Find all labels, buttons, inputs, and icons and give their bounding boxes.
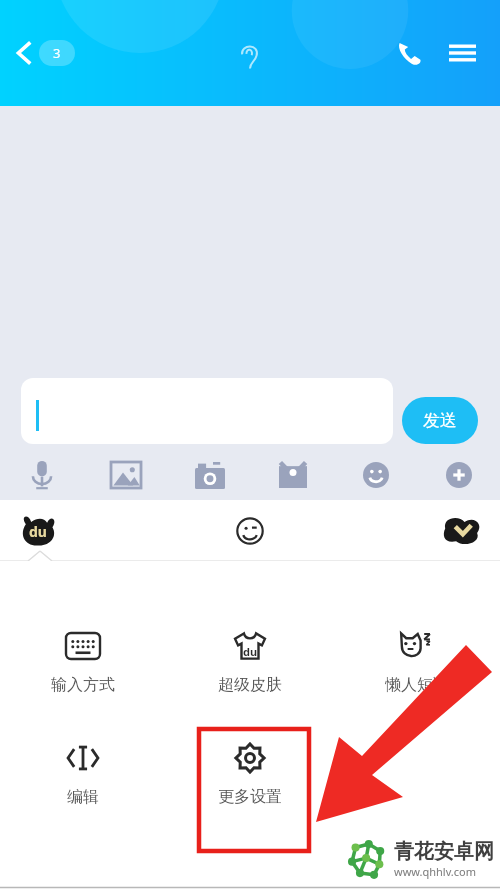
staticText: 发送 <box>423 410 457 431</box>
button[interactable]: Photo <box>84 452 168 498</box>
button[interactable]: Emoji <box>334 452 417 498</box>
button[interactable]: Baidu input <box>14 507 62 555</box>
staticText: 更多设置 <box>218 787 282 807</box>
staticText: du <box>243 644 258 659</box>
staticText: 超级皮肤 <box>218 675 282 695</box>
button[interactable]: Listen <box>229 35 271 77</box>
staticText: 输入方式 <box>51 675 115 695</box>
button[interactable]: Emoji <box>226 507 274 555</box>
staticText: 青花安卓网 <box>394 839 494 864</box>
staticText: du <box>29 522 47 541</box>
staticText: www.qhhlv.com <box>394 864 476 879</box>
button[interactable]: Call <box>388 31 432 75</box>
button[interactable]: Voice <box>0 452 84 498</box>
staticText: 懒人短语 <box>385 675 449 695</box>
button[interactable]: du <box>166 625 333 717</box>
staticText: 编辑 <box>67 787 99 807</box>
button[interactable]: 编辑 <box>0 737 166 829</box>
button[interactable]: Menu <box>440 31 484 75</box>
staticText: 3 <box>53 44 61 62</box>
button[interactable]: 发送 <box>402 397 478 444</box>
button[interactable]: More <box>417 452 500 498</box>
button[interactable]: 懒人短语 <box>333 625 500 717</box>
button[interactable] <box>21 378 393 444</box>
button[interactable]: Red packet <box>251 452 334 498</box>
button[interactable]: 输入方式 <box>0 625 166 717</box>
button[interactable]: 更多设置 <box>166 737 333 829</box>
button[interactable]: Camera <box>168 452 251 498</box>
button[interactable]: Collapse keyboard <box>438 507 486 555</box>
button[interactable]: Back, 3 unread <box>14 29 75 77</box>
